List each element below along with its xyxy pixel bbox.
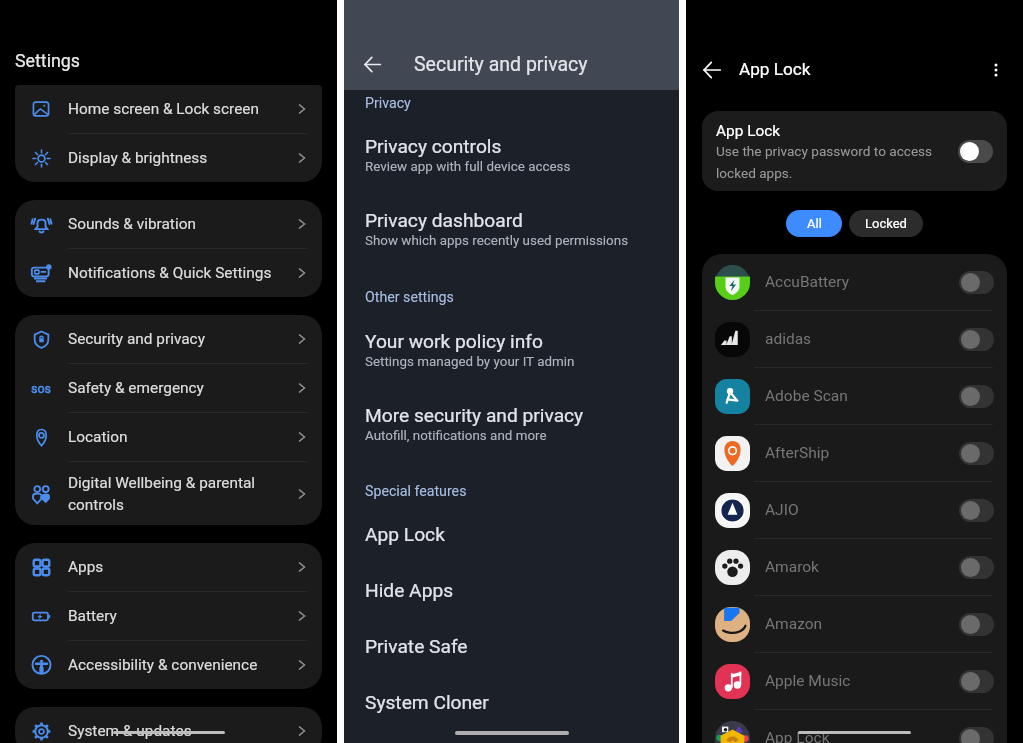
- button[interactable]: Location: [15, 413, 322, 461]
- staticText: Autofill, notifications and more: [365, 428, 547, 444]
- button[interactable]: AJIO: [702, 482, 1007, 538]
- staticText: App Lock: [365, 523, 445, 546]
- button[interactable]: Home screen & Lock screen: [15, 85, 322, 133]
- button[interactable]: App Lock: [702, 111, 1007, 191]
- button[interactable]: Private Safe: [344, 633, 679, 673]
- button[interactable]: Privacy dashboard: [344, 207, 679, 254]
- button[interactable]: AccuBattery: [702, 254, 1007, 310]
- staticText: System & updates: [68, 722, 284, 740]
- staticText: Show which apps recently used permission…: [365, 233, 629, 249]
- staticText: Amazon: [765, 615, 959, 633]
- staticText: System Cloner: [365, 691, 489, 714]
- staticText: Notifications & Quick Settings: [68, 264, 284, 282]
- staticText: AccuBattery: [765, 273, 959, 291]
- staticText: Security and privacy: [68, 330, 284, 348]
- button[interactable]: System Cloner: [344, 689, 679, 729]
- staticText: sos: [31, 381, 52, 396]
- staticText: Settings managed by your IT admin: [365, 354, 575, 370]
- staticText: Apps: [68, 558, 284, 576]
- button[interactable]: App Lock toggle: [958, 140, 993, 163]
- button[interactable]: Lock Apple Music: [959, 670, 994, 693]
- button[interactable]: More security and privacy: [344, 402, 679, 449]
- button[interactable]: Apps: [15, 543, 322, 591]
- staticText: Locked: [865, 216, 907, 231]
- staticText: Special features: [365, 483, 467, 500]
- staticText: Digital Wellbeing & parental controls: [68, 474, 284, 514]
- button[interactable]: sos: [15, 364, 322, 412]
- staticText: Display & brightness: [68, 149, 284, 167]
- staticText: adidas: [765, 330, 959, 348]
- button[interactable]: Lock adidas: [959, 328, 994, 351]
- staticText: Sounds & vibration: [68, 215, 284, 233]
- button[interactable]: Lock App Lock: [959, 727, 994, 743]
- staticText: All: [807, 216, 822, 231]
- button[interactable]: Adobe Scan: [702, 368, 1007, 424]
- staticText: Home screen & Lock screen: [68, 100, 284, 118]
- button[interactable]: Notifications & Quick Settings: [15, 249, 322, 297]
- button[interactable]: AfterShip: [702, 425, 1007, 481]
- button[interactable]: Battery: [15, 592, 322, 640]
- button[interactable]: Hide Apps: [344, 577, 679, 617]
- button[interactable]: Back: [694, 52, 730, 88]
- staticText: Apple Music: [765, 672, 959, 690]
- button[interactable]: App Lock: [702, 710, 1007, 743]
- staticText: Review app with full device access: [365, 159, 571, 175]
- staticText: Safety & emergency: [68, 379, 284, 397]
- button[interactable]: Lock Amazon: [959, 613, 994, 636]
- staticText: AJIO: [765, 501, 959, 519]
- staticText: Location: [68, 428, 284, 446]
- staticText: Your work policy info: [365, 330, 543, 353]
- button[interactable]: Apple Music: [702, 653, 1007, 709]
- staticText: Other settings: [365, 289, 454, 306]
- button[interactable]: All: [786, 210, 842, 237]
- staticText: Amarok: [765, 558, 959, 576]
- button[interactable]: More options: [978, 52, 1014, 88]
- staticText: Privacy: [365, 95, 411, 112]
- staticText: App Lock: [765, 729, 959, 743]
- staticText: Privacy dashboard: [365, 209, 523, 232]
- staticText: App Lock: [716, 122, 781, 140]
- button[interactable]: Lock Amarok: [959, 556, 994, 579]
- staticText: AfterShip: [765, 444, 959, 462]
- button[interactable]: Sounds & vibration: [15, 200, 322, 248]
- staticText: App Lock: [739, 59, 811, 79]
- staticText: Adobe Scan: [765, 387, 959, 405]
- button[interactable]: Accessibility & convenience: [15, 641, 322, 689]
- button[interactable]: Amazon: [702, 596, 1007, 652]
- staticText: More security and privacy: [365, 404, 584, 427]
- button[interactable]: Lock AccuBattery: [959, 271, 994, 294]
- staticText: Security and privacy: [414, 53, 588, 76]
- button[interactable]: Privacy controls: [344, 133, 679, 180]
- staticText: Settings: [15, 50, 80, 71]
- button[interactable]: Digital Wellbeing & parental controls: [15, 462, 322, 525]
- staticText: Battery: [68, 607, 284, 625]
- staticText: Hide Apps: [365, 579, 454, 602]
- button[interactable]: Your work policy info: [344, 328, 679, 375]
- button[interactable]: Lock AfterShip: [959, 442, 994, 465]
- button[interactable]: Display & brightness: [15, 134, 322, 182]
- staticText: Use the privacy password to access locke…: [716, 143, 938, 181]
- staticText: Private Safe: [365, 635, 468, 658]
- staticText: Accessibility & convenience: [68, 656, 284, 674]
- button[interactable]: Locked: [849, 210, 923, 237]
- button[interactable]: adidas: [702, 311, 1007, 367]
- staticText: Privacy controls: [365, 135, 502, 158]
- button[interactable]: Amarok: [702, 539, 1007, 595]
- button[interactable]: App Lock: [344, 521, 679, 561]
- button[interactable]: Lock Adobe Scan: [959, 385, 994, 408]
- button[interactable]: Security and privacy: [15, 315, 322, 363]
- button[interactable]: Back: [354, 46, 390, 82]
- button[interactable]: Lock AJIO: [959, 499, 994, 522]
- button[interactable]: System & updates: [15, 707, 322, 743]
